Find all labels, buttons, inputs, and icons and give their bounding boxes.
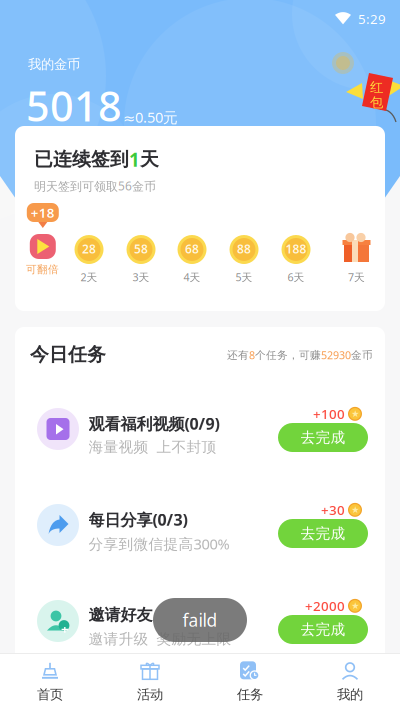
staticText: 去完成 [300,524,345,542]
staticText: + [61,621,69,638]
staticText: +2000 [305,597,345,615]
staticText: 活动 [137,686,163,703]
staticText: 邀请好友 [88,605,152,625]
staticText: 去完成 [300,428,345,446]
staticText: 188 [285,241,306,257]
staticText: 红 [370,79,383,95]
staticText: 天 [140,148,159,171]
staticText: 可翻倍 [26,263,59,276]
button[interactable]: 首页 [0,654,100,710]
staticText: 7天 [348,270,365,284]
staticText: ★ [351,505,359,515]
staticText: 6天 [287,270,304,284]
staticText: 28 [82,241,96,257]
button[interactable]: 去完成 [278,615,368,644]
staticText: 每日分享(0/3) [88,509,187,530]
staticText: ★ [351,409,359,419]
staticText: +18 [31,204,55,221]
staticText: 68 [185,241,199,257]
staticText: 我的 [337,686,363,703]
staticText: 还有 [227,348,249,362]
staticText: 去完成 [300,620,345,638]
button[interactable]: 任务 [200,654,300,710]
staticText: 观看福利视频(0/9) [88,413,219,434]
staticText: 任务 [237,686,263,703]
button[interactable]: 我的 [300,654,400,710]
staticText: 已连续签到 [34,148,129,171]
staticText: 5018 [26,78,122,133]
staticText: ★ [351,601,359,611]
staticText: ≈0.50元 [123,107,178,127]
staticText: 58 [134,241,148,257]
staticText: 52930 [321,348,351,362]
staticText: 我的金币 [28,56,80,72]
staticText: +30 [321,501,345,519]
button[interactable]: 活动 [100,654,200,710]
staticText: +100 [313,405,345,423]
staticText: 2天 [80,270,97,284]
staticText: 个任务，可赚 [255,348,321,362]
staticText: 1 [129,147,140,172]
staticText: 海量视频 上不封顶 [88,438,216,456]
staticText: 8 [249,348,255,362]
staticText: 5:29 [358,10,386,28]
staticText: 明天签到可领取56金币 [34,178,156,194]
staticText: 5天 [235,270,252,284]
staticText: 首页 [37,686,63,703]
button[interactable]: 去完成 [278,423,368,452]
staticText: 4天 [183,270,200,284]
staticText: 邀请升级 奖励无上限 [88,630,231,648]
button[interactable]: 去完成 [278,519,368,548]
staticText: 3天 [132,270,149,284]
staticText: 今日任务 [30,343,106,366]
staticText: 分享到微信提高300% [88,534,229,553]
staticText: 包 [370,94,383,111]
staticText: faild [182,608,217,631]
staticText: 88 [237,241,251,257]
staticText: 金币 [351,348,373,362]
